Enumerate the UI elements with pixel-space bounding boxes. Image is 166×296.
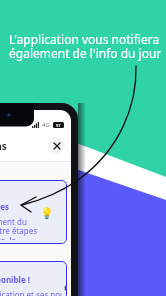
staticText: Voici le déroulement du parcours en quat…: [0, 216, 38, 240]
button[interactable]: Les quatre étapes: [0, 180, 67, 244]
staticText: 💡: [40, 207, 54, 220]
staticText: L'application vous notifiera également d…: [9, 31, 166, 62]
staticText: 97: [56, 123, 61, 128]
staticText: Les quatre étapes: [0, 201, 10, 212]
button[interactable]: Nouveauté disponible !: [0, 261, 67, 296]
staticText: Notifications: [0, 139, 7, 153]
staticText: Nouveauté disponible !: [0, 274, 31, 285]
staticText: 4G: [42, 121, 50, 129]
staticText: Découvrez l'application et ses nouvelles…: [0, 289, 63, 296]
button[interactable]: Close: [48, 137, 65, 154]
